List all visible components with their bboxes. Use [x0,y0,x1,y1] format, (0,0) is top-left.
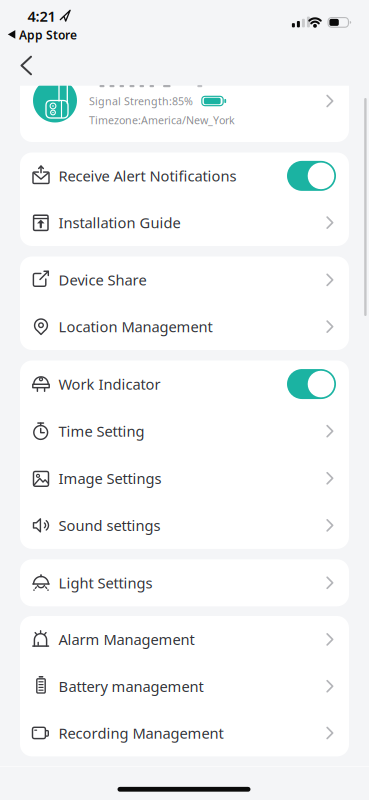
button[interactable]: Work Indicator [287,369,336,399]
button[interactable]: Recording Management [20,710,349,756]
staticText: Light Settings [58,573,152,593]
staticText: Timezone:America/New_York [89,113,235,127]
button[interactable]: Light Settings [20,559,349,606]
staticText: Work Indicator [58,374,160,394]
staticText: Device Share [58,270,146,290]
staticText: Time Setting [58,421,144,441]
button[interactable]: Work Indicator [20,360,349,408]
staticText: Recording Management [58,723,223,743]
button[interactable]: Time Setting [20,408,349,455]
button[interactable]: Battery management [20,663,349,710]
button[interactable]: Receive Alert Notifications [287,161,336,191]
staticText: Alarm Management [58,630,194,649]
staticText: Receive Alert Notifications [58,166,236,186]
button[interactable]: Signal Strength:85% [20,69,349,142]
button[interactable]: Alarm Management [20,616,349,663]
staticText: App Store [19,27,77,43]
staticText: Signal Strength:85% [89,94,193,108]
button[interactable]: Location Management [20,303,349,350]
staticText: Installation Guide [58,213,180,232]
staticText: Image Settings [58,468,161,488]
button[interactable]: Installation Guide [20,199,349,246]
staticText: 4:21 [27,6,55,26]
staticText: Battery management [58,676,203,696]
button[interactable]: Device Share [20,256,349,303]
button[interactable]: Image Settings [20,455,349,502]
staticText: Sound settings [58,516,160,535]
button[interactable]: Receive Alert Notifications [20,152,349,199]
button[interactable]: Back [12,51,41,79]
staticText: Location Management [58,317,212,336]
button[interactable]: Sound settings [20,502,349,549]
